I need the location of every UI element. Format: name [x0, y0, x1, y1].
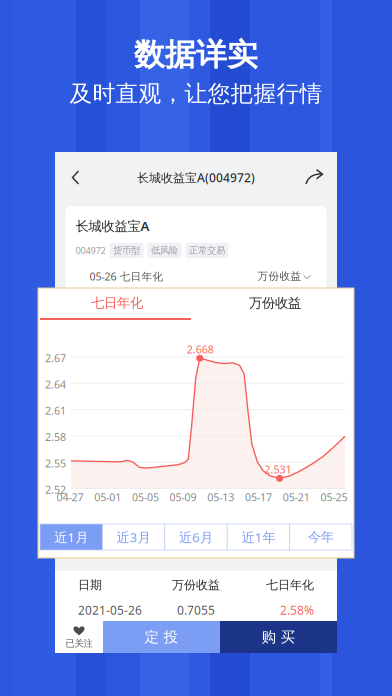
staticText: 日期 [78, 578, 102, 592]
staticText: 已关注 [65, 638, 92, 649]
staticText: 近6月 [179, 528, 213, 546]
staticText: 05-17 [245, 490, 272, 504]
staticText: 万份收益 [257, 270, 301, 283]
staticText: 2.58 [45, 430, 66, 444]
button[interactable]: 分享 [301, 160, 329, 195]
staticText: 正常交易 [189, 245, 225, 256]
staticText: 2.58% [280, 602, 314, 618]
button[interactable]: 万份收益 [196, 288, 354, 318]
button[interactable]: 近6月 [165, 524, 227, 550]
staticText: 05-26 七日年化 [89, 269, 163, 283]
staticText: 04-27 [56, 490, 83, 504]
button[interactable]: 今年 [290, 524, 352, 550]
staticText: 05-09 [170, 490, 197, 504]
staticText: 05-13 [207, 490, 234, 504]
button[interactable]: 近1月 [40, 524, 102, 550]
staticText: 2.531 [264, 462, 291, 477]
staticText: 及时直观，让您把握行情 [69, 80, 322, 107]
staticText: 05-21 [283, 490, 310, 504]
staticText: 货币型 [113, 245, 140, 256]
staticText: 2.668 [187, 342, 214, 356]
staticText: 近1年 [241, 528, 275, 546]
staticText: 004972 [75, 244, 105, 257]
staticText: 05-01 [94, 490, 121, 504]
staticText: 长城收益宝A [75, 217, 149, 235]
button[interactable]: 近3月 [102, 524, 165, 550]
button[interactable]: 近1年 [227, 524, 290, 550]
staticText: 低风险 [151, 245, 178, 256]
staticText: 近1月 [54, 528, 88, 546]
staticText: 2.67 [45, 351, 66, 365]
staticText: 万份收益 [249, 295, 301, 311]
button[interactable]: 返回 [63, 160, 91, 195]
staticText: 05-05 [132, 490, 159, 504]
button[interactable]: 已关注 [55, 621, 103, 653]
staticText: 定 投 [144, 628, 178, 646]
staticText: 05-25 [320, 490, 347, 504]
staticText: 七日年化 [266, 578, 314, 592]
staticText: 2021-05-26 [78, 602, 142, 618]
staticText: 数据详实 [134, 36, 258, 74]
staticText: 七日年化 [91, 295, 143, 311]
staticText: 2.64 [45, 377, 66, 391]
staticText: 长城收益宝A(004972) [137, 169, 255, 185]
staticText: 万份收益 [172, 578, 220, 592]
staticText: 2.55 [45, 456, 66, 470]
staticText: 2.61 [45, 404, 66, 418]
staticText: 购 买 [261, 628, 295, 646]
staticText: 2.52 [45, 482, 66, 497]
staticText: 近3月 [117, 528, 151, 546]
button[interactable]: 七日年化 [38, 288, 196, 318]
button[interactable]: 定 投 [103, 621, 220, 653]
staticText: 今年 [308, 529, 334, 545]
button[interactable]: 购 买 [220, 621, 337, 653]
staticText: 0.7055 [177, 602, 215, 618]
